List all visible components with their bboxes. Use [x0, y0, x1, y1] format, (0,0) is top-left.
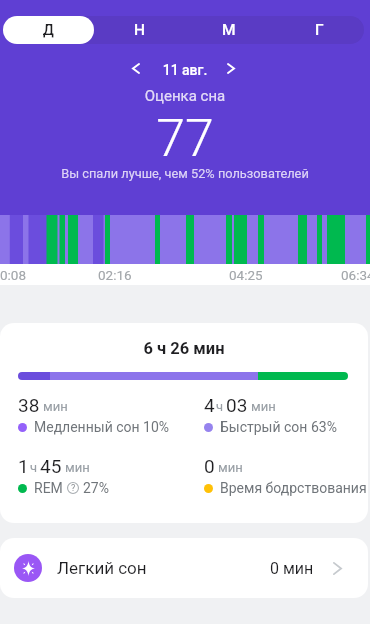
staticText: ч — [30, 460, 38, 475]
button[interactable]: Д — [3, 16, 94, 44]
button[interactable]: Следующий день — [218, 55, 244, 81]
staticText: Г — [315, 21, 324, 39]
staticText: REM — [34, 480, 63, 496]
staticText: ? — [71, 483, 76, 494]
staticText: 04:25 — [229, 267, 263, 283]
button[interactable]: Н — [94, 16, 184, 44]
staticText: 11 авг. — [0, 62, 370, 78]
staticText: 03 — [226, 394, 248, 416]
staticText: 02:16 — [98, 267, 132, 283]
staticText: Легкий сон — [57, 558, 147, 578]
staticText: 6 ч 26 мин — [0, 339, 368, 358]
staticText: Оценка сна — [0, 87, 370, 105]
staticText: 45 — [40, 455, 62, 477]
staticText: 1 — [18, 455, 29, 477]
staticText: 06:34 — [341, 267, 370, 283]
staticText: Вы спали лучше, чем 52% пользователей — [0, 166, 370, 181]
staticText: М — [222, 21, 236, 39]
staticText: 38 — [18, 394, 40, 416]
staticText: ч — [216, 399, 224, 414]
staticText: мин — [65, 460, 90, 475]
staticText: 0:08 — [0, 267, 27, 283]
staticText: 4 — [204, 394, 215, 416]
staticText: Д — [43, 22, 54, 39]
staticText: Н — [134, 21, 145, 39]
button[interactable]: Г — [274, 16, 364, 44]
staticText: Медленный сон 10% — [34, 419, 170, 435]
staticText: мин — [43, 399, 68, 414]
button[interactable]: Легкий сон — [0, 538, 368, 598]
button[interactable]: М — [184, 16, 274, 44]
staticText: 27% — [83, 480, 109, 496]
button[interactable]: Предыдущий день — [123, 55, 149, 81]
staticText: Время бодрствования — [220, 480, 367, 496]
staticText: 0 — [204, 455, 215, 477]
staticText: 0 мин — [270, 559, 314, 578]
staticText: мин — [218, 460, 243, 475]
staticText: Быстрый сон 63% — [220, 419, 337, 435]
staticText: 77 — [0, 108, 370, 169]
staticText: мин — [251, 399, 276, 414]
